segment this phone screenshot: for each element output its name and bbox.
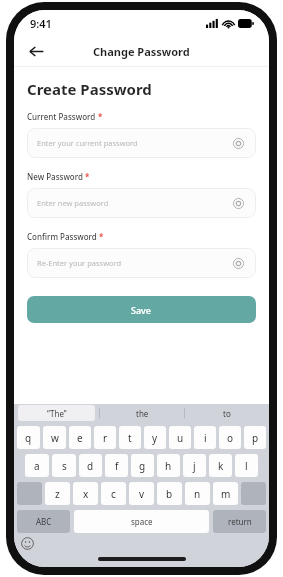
button[interactable]: l — [235, 454, 258, 477]
button[interactable]: y — [144, 426, 166, 449]
staticText: p — [252, 431, 259, 445]
staticText: h — [165, 459, 172, 473]
staticText: k — [218, 459, 224, 473]
button[interactable]: b — [157, 482, 182, 505]
button[interactable]: c — [101, 482, 126, 505]
button[interactable]: Enter new password — [27, 188, 256, 218]
staticText: Save — [131, 304, 152, 316]
button[interactable]: k — [209, 454, 232, 477]
button[interactable]: q — [17, 426, 40, 449]
button[interactable]: Back — [22, 37, 50, 65]
button[interactable]: Re-Enter your password — [27, 248, 256, 278]
staticText: Enter your current password — [37, 138, 230, 148]
staticText: to — [223, 408, 231, 419]
button[interactable]: the — [100, 404, 184, 422]
staticText: b — [166, 487, 173, 501]
button[interactable]: Emoji — [21, 537, 34, 550]
staticText: * — [98, 111, 103, 122]
button[interactable]: m — [213, 482, 238, 505]
staticText: v — [139, 487, 145, 501]
staticText: * — [85, 171, 90, 182]
button[interactable]: Return — [213, 510, 266, 533]
button[interactable]: space — [74, 510, 209, 533]
staticText: a — [34, 459, 40, 473]
staticText: q — [25, 431, 32, 445]
button[interactable]: p — [244, 426, 266, 449]
staticText: i — [204, 431, 207, 445]
button[interactable]: “The” — [18, 405, 95, 421]
staticText: d — [87, 459, 94, 473]
button[interactable]: j — [183, 454, 206, 477]
staticText: r — [103, 431, 108, 445]
staticText: Confirm Password — [27, 231, 97, 242]
button[interactable]: z — [45, 482, 70, 505]
button[interactable]: a — [25, 454, 49, 477]
staticText: the — [136, 408, 149, 419]
staticText: * — [99, 231, 104, 242]
button[interactable]: i — [194, 426, 216, 449]
staticText: space — [131, 516, 153, 527]
button[interactable]: Enter your current password — [27, 128, 256, 158]
staticText: o — [227, 431, 234, 445]
staticText: g — [139, 459, 146, 473]
staticText: Create Password — [27, 79, 152, 99]
button[interactable]: ABC — [17, 510, 70, 533]
button[interactable]: u — [169, 426, 191, 449]
button[interactable]: g — [131, 454, 154, 477]
button[interactable]: o — [219, 426, 241, 449]
staticText: return — [228, 516, 252, 527]
staticText: s — [62, 459, 67, 473]
button[interactable]: v — [129, 482, 154, 505]
button[interactable]: to — [185, 404, 269, 422]
button[interactable]: Show password — [230, 195, 246, 211]
button[interactable]: Save — [27, 296, 256, 323]
staticText: c — [111, 487, 116, 501]
staticText: x — [83, 487, 89, 501]
staticText: l — [245, 459, 248, 473]
button[interactable]: t — [119, 426, 141, 449]
button[interactable]: x — [73, 482, 98, 505]
button[interactable]: w — [43, 426, 66, 449]
staticText: 9:41 — [30, 16, 52, 31]
staticText: w — [51, 431, 59, 445]
button[interactable]: e — [69, 426, 91, 449]
staticText: ABC — [36, 516, 52, 527]
button[interactable]: r — [94, 426, 116, 449]
button[interactable]: Show password — [230, 255, 246, 271]
staticText: y — [152, 431, 158, 445]
staticText: Re-Enter your password — [37, 258, 230, 268]
staticText: New Password — [27, 171, 83, 182]
button[interactable]: h — [157, 454, 180, 477]
staticText: f — [115, 459, 119, 473]
staticText: Current Password — [27, 111, 96, 122]
staticText: u — [177, 431, 184, 445]
staticText: e — [77, 431, 83, 445]
staticText: n — [194, 487, 201, 501]
button[interactable]: Show password — [230, 135, 246, 151]
staticText: j — [193, 459, 196, 473]
staticText: m — [221, 487, 231, 501]
staticText: Enter new password — [37, 198, 230, 208]
button[interactable]: n — [185, 482, 210, 505]
button[interactable]: s — [52, 454, 76, 477]
button[interactable]: f — [105, 454, 128, 477]
button[interactable]: d — [79, 454, 102, 477]
staticText: z — [55, 487, 60, 501]
staticText: Change Password — [93, 44, 190, 59]
staticText: “The” — [47, 408, 67, 419]
staticText: t — [128, 431, 132, 445]
